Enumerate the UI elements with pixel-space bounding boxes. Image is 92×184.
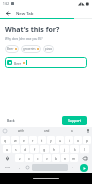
staticText: r	[32, 138, 34, 143]
staticText: m	[72, 156, 76, 161]
button[interactable]: Send	[80, 164, 88, 172]
staticText: d	[24, 147, 27, 152]
staticText: groceries	[23, 47, 36, 51]
button[interactable]: h	[50, 145, 59, 153]
button[interactable]: j	[60, 145, 69, 153]
staticText: s	[15, 147, 17, 152]
button[interactable]: q	[1, 136, 10, 144]
button[interactable]: Comma	[15, 163, 23, 171]
staticText: y	[50, 138, 52, 143]
button[interactable]: u	[56, 136, 64, 144]
staticText: w	[14, 138, 17, 143]
button[interactable]: Beer	[5, 57, 87, 68]
button[interactable]: z	[15, 154, 24, 162]
button[interactable]: c	[34, 154, 42, 162]
button[interactable]: l	[80, 145, 89, 153]
staticText: k	[74, 147, 76, 152]
staticText: g	[43, 147, 46, 152]
button[interactable]: m	[70, 154, 78, 162]
button[interactable]: Voice input	[84, 127, 92, 135]
staticText: Back	[7, 118, 15, 123]
button[interactable]: i	[65, 136, 73, 144]
button[interactable]: groceries	[21, 45, 41, 53]
button[interactable]: a	[59, 127, 84, 135]
staticText: 1:52	[3, 2, 9, 6]
button[interactable]: r	[29, 136, 37, 144]
button[interactable]: e	[20, 136, 28, 144]
staticText: z	[19, 156, 21, 161]
staticText: pizza	[45, 47, 52, 51]
button[interactable]: Back	[3, 8, 13, 18]
staticText: n	[64, 156, 67, 161]
staticText: Beer	[14, 61, 22, 65]
staticText: a	[71, 129, 73, 133]
button[interactable]: Back	[5, 116, 17, 125]
button[interactable]: Shift	[1, 154, 14, 162]
button[interactable]: b	[52, 154, 60, 162]
staticText: b	[55, 156, 58, 161]
button[interactable]: p	[83, 136, 91, 144]
button[interactable]: Assistant	[0, 127, 9, 135]
staticText: e	[23, 138, 25, 143]
staticText: ,	[19, 165, 20, 169]
staticText: f	[34, 147, 36, 152]
staticText: i	[69, 138, 70, 143]
staticText: v	[46, 156, 48, 161]
button[interactable]: d	[21, 145, 29, 153]
button[interactable]: t	[38, 136, 46, 144]
staticText: x	[28, 156, 30, 161]
button[interactable]: Symbols	[1, 163, 14, 171]
staticText: .	[72, 165, 73, 169]
staticText: with	[18, 129, 25, 133]
button[interactable]: Support	[62, 116, 87, 125]
staticText: j	[64, 147, 65, 152]
staticText: Beer	[7, 47, 14, 51]
staticText: c	[37, 156, 39, 161]
button[interactable]: w	[11, 136, 19, 144]
staticText: ?123	[5, 166, 10, 169]
button[interactable]: o	[74, 136, 82, 144]
button[interactable]: Beer	[5, 45, 19, 53]
button[interactable]: s	[12, 145, 20, 153]
staticText: u	[59, 138, 62, 143]
button[interactable]: y	[47, 136, 55, 144]
button[interactable]: pizza	[43, 45, 54, 53]
staticText: o	[77, 138, 80, 143]
staticText: New Tab	[16, 10, 34, 16]
staticText: t	[41, 138, 43, 143]
staticText: Support	[68, 118, 81, 123]
staticText: and	[44, 129, 50, 133]
staticText: l	[84, 147, 85, 152]
staticText: h	[53, 147, 56, 152]
button[interactable]: n	[61, 154, 69, 162]
staticText: q	[4, 138, 7, 143]
button[interactable]: Emoji	[24, 163, 31, 171]
staticText: What's this for?	[5, 25, 60, 35]
button[interactable]: v	[43, 154, 51, 162]
staticText: p	[86, 138, 89, 143]
button[interactable]: a	[3, 145, 11, 153]
button[interactable]: g	[40, 145, 49, 153]
button[interactable]: and	[34, 127, 59, 135]
button[interactable]: f	[30, 145, 39, 153]
button[interactable]: k	[70, 145, 79, 153]
staticText: Why does John owe you $5?	[5, 37, 43, 41]
staticText: a	[6, 147, 8, 152]
button[interactable]: with	[9, 127, 34, 135]
button[interactable]: x	[25, 154, 33, 162]
button[interactable]: Backspace	[79, 154, 91, 162]
